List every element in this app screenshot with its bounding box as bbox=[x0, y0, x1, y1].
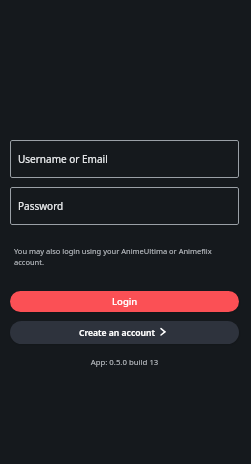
staticText: You may also login using your AnimeUltim… bbox=[14, 246, 231, 267]
staticText: Create an account bbox=[79, 327, 156, 339]
button[interactable]: Username or Email bbox=[10, 140, 239, 178]
button[interactable]: Create an account bbox=[10, 321, 239, 344]
staticText: Username or Email bbox=[18, 152, 108, 166]
staticText: Password bbox=[18, 199, 64, 213]
staticText: Login bbox=[112, 295, 138, 308]
other: Go bbox=[160, 328, 171, 338]
button[interactable]: Password bbox=[10, 187, 239, 225]
button[interactable]: Login bbox=[10, 291, 239, 312]
staticText: App: 0.5.0 build 13 bbox=[10, 357, 239, 368]
